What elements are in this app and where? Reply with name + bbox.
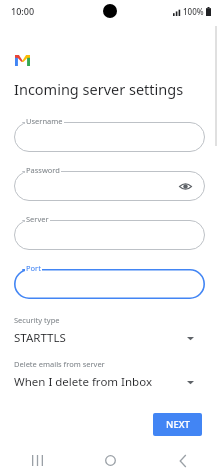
staticText: NEXT — [166, 418, 190, 431]
staticText: 10:00 — [11, 5, 35, 17]
button[interactable]: Port — [14, 263, 205, 299]
button[interactable]: NEXT — [153, 413, 202, 436]
staticText: Password — [26, 165, 60, 175]
staticText: Security type — [14, 315, 60, 325]
staticText: Incoming server settings — [14, 79, 184, 99]
button[interactable]: Username — [14, 116, 205, 152]
staticText: STARTTLS — [14, 330, 187, 346]
button[interactable]: Security type — [14, 315, 205, 346]
button[interactable]: Recent apps — [20, 445, 54, 476]
staticText: When I delete from Inbox — [14, 374, 187, 390]
button[interactable]: Server — [14, 214, 205, 250]
staticText: Delete emails from server — [14, 359, 105, 369]
staticText: 100% — [183, 6, 204, 17]
staticText: Port — [26, 263, 41, 273]
button[interactable]: Show password — [177, 178, 193, 194]
button[interactable]: Back — [166, 445, 200, 476]
staticText: Username — [26, 116, 63, 126]
button[interactable]: Delete emails from server — [14, 359, 205, 390]
button[interactable]: Password — [14, 165, 205, 201]
staticText: Server — [26, 214, 49, 224]
button[interactable]: Home — [93, 445, 127, 476]
